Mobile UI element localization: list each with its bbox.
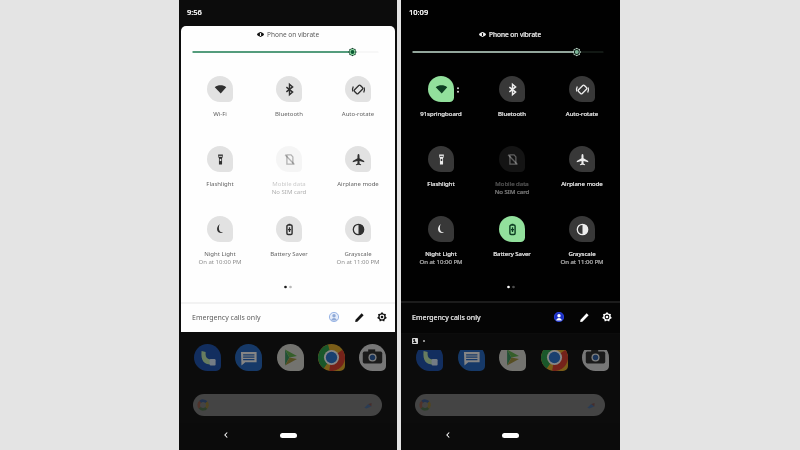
staticText: Night Light <box>408 250 474 258</box>
staticText: Auto-rotate <box>325 110 391 118</box>
staticText: Phone on vibrate <box>267 30 320 39</box>
staticText: No SIM card <box>256 188 322 196</box>
staticText: On at 10:00 PM <box>187 258 253 266</box>
button[interactable]: 91springboard <box>408 76 474 130</box>
staticText: Battery Saver <box>256 250 322 258</box>
button[interactable]: Night Light <box>408 216 474 270</box>
button[interactable]: Settings <box>600 310 614 324</box>
button[interactable]: Edit tiles <box>577 310 591 324</box>
button[interactable]: Mobile data <box>256 146 322 200</box>
staticText: Bluetooth <box>256 110 322 118</box>
staticText: Night Light <box>187 250 253 258</box>
staticText: On at 10:00 PM <box>408 258 474 266</box>
button[interactable]: Bluetooth <box>256 76 322 130</box>
staticText: Battery Saver <box>479 250 545 258</box>
staticText: No SIM card <box>479 188 545 196</box>
staticText: Flashlight <box>187 180 253 188</box>
staticText: Mobile data <box>256 180 322 188</box>
button[interactable]: Home <box>502 433 519 438</box>
button[interactable]: Search <box>193 394 382 416</box>
staticText: Grayscale <box>325 250 391 258</box>
button[interactable]: Night Light <box>187 216 253 270</box>
button[interactable]: Grayscale <box>325 216 391 270</box>
button[interactable]: Flashlight <box>187 146 253 200</box>
button[interactable]: Phone <box>416 344 443 371</box>
staticText: On at 11:00 PM <box>549 258 615 266</box>
staticText: Mobile data <box>479 180 545 188</box>
staticText: On at 11:00 PM <box>325 258 391 266</box>
button[interactable]: Back <box>222 431 230 439</box>
staticText: Grayscale <box>549 250 615 258</box>
button[interactable]: Battery Saver <box>479 216 545 270</box>
staticText: 91springboard <box>408 110 474 118</box>
button[interactable]: Airplane mode <box>549 146 615 200</box>
staticText: Airplane mode <box>549 180 615 188</box>
staticText: Flashlight <box>408 180 474 188</box>
button[interactable]: Airplane mode <box>325 146 391 200</box>
button[interactable]: Home <box>280 433 297 438</box>
staticText: 9:56 <box>187 7 202 17</box>
button[interactable]: Messages <box>458 344 485 371</box>
button[interactable]: Chrome <box>318 344 345 371</box>
button[interactable]: Edit tiles <box>352 310 366 324</box>
button[interactable]: Auto-rotate <box>325 76 391 130</box>
button[interactable]: Mobile data <box>479 146 545 200</box>
button[interactable]: Grayscale <box>549 216 615 270</box>
button[interactable]: Bluetooth <box>479 76 545 130</box>
button[interactable]: Camera <box>359 344 386 371</box>
staticText: Airplane mode <box>325 180 391 188</box>
button[interactable]: Play Store <box>277 344 304 371</box>
staticText: Auto-rotate <box>549 110 615 118</box>
button[interactable]: Search <box>415 394 605 416</box>
staticText: Emergency calls only <box>412 313 481 323</box>
staticText: 10:09 <box>409 7 429 17</box>
button[interactable]: Messages <box>235 344 262 371</box>
staticText: Wi-Fi <box>187 110 253 118</box>
staticText: Emergency calls only <box>192 313 261 323</box>
button[interactable]: Auto-rotate <box>549 76 615 130</box>
button[interactable]: User account <box>552 310 566 324</box>
button[interactable]: Settings <box>375 310 389 324</box>
button[interactable]: Wi-Fi <box>187 76 253 130</box>
button[interactable]: Phone <box>194 344 221 371</box>
button[interactable]: Play Store <box>499 344 526 371</box>
button[interactable]: Battery Saver <box>256 216 322 270</box>
button[interactable]: Back <box>444 431 452 439</box>
staticText: Phone on vibrate <box>489 30 542 39</box>
button[interactable]: Flashlight <box>408 146 474 200</box>
button[interactable]: Camera <box>582 344 609 371</box>
button[interactable]: Chrome <box>541 344 568 371</box>
button[interactable]: User account <box>327 310 341 324</box>
staticText: Bluetooth <box>479 110 545 118</box>
